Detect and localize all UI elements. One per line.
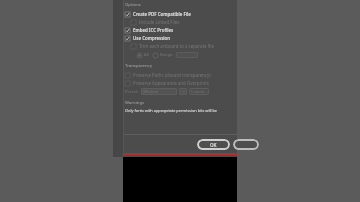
staticText: Options [125, 2, 141, 8]
button[interactable]: Trim each artboard to a separate file [131, 42, 235, 50]
staticText: [Medium Resolution] [143, 89, 175, 94]
button[interactable]: Embed ICC Profiles [125, 26, 235, 34]
button[interactable]: OK [197, 139, 230, 150]
staticText: Custom... [191, 89, 207, 94]
staticText: Transparency [125, 63, 152, 69]
staticText: Warnings [125, 100, 145, 106]
staticText: All [144, 52, 149, 58]
button[interactable]: Cancel [233, 139, 259, 150]
button[interactable]: Use Compression [125, 34, 235, 42]
staticText: OK [210, 142, 217, 148]
button[interactable]: Open preset menu [179, 88, 187, 95]
button[interactable]: All [137, 51, 149, 59]
staticText: Use Compression [133, 35, 171, 41]
staticText: Trim each artboard to a separate file [139, 43, 214, 49]
staticText: Only fonts with appropriate permission b… [125, 108, 235, 113]
button[interactable]: Custom... [189, 88, 209, 95]
staticText: Range: [160, 52, 174, 58]
staticText: Preserve Appearance and Overprints [133, 80, 209, 86]
staticText: Include Linked Files [139, 19, 180, 25]
button[interactable]: Preserve Paths (discard transparency) [125, 71, 235, 79]
staticText: Embed ICC Profiles [133, 27, 174, 33]
button[interactable]: Include Linked Files [131, 18, 235, 26]
staticText: Preset: [125, 89, 139, 95]
button[interactable]: [Medium Resolution] [143, 88, 175, 95]
button[interactable]: Preserve Appearance and Overprints [125, 79, 235, 87]
button[interactable] [176, 52, 198, 58]
button[interactable]: Range: [153, 51, 174, 59]
button[interactable]: Create PDF Compatible File [125, 10, 235, 18]
staticText: Create PDF Compatible File [133, 11, 191, 17]
staticText: Preserve Paths (discard transparency) [133, 72, 211, 78]
